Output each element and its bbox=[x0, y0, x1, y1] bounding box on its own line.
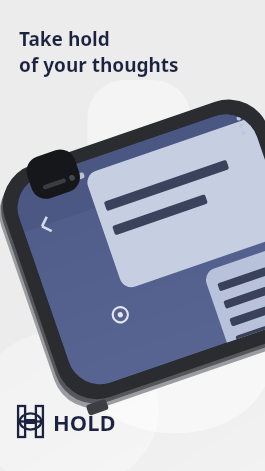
staticText: Take hold bbox=[19, 26, 110, 52]
staticText: of your thoughts bbox=[19, 52, 179, 78]
button[interactable]: HOLD bbox=[17, 406, 116, 437]
staticText: HOLD bbox=[53, 407, 116, 437]
